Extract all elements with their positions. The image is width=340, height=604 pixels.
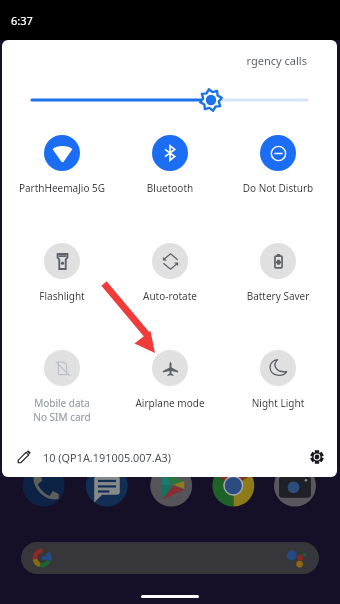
button[interactable]: Auto-rotate [116, 243, 224, 319]
staticText: No SIM card [8, 410, 116, 424]
button[interactable]: Airplane mode [116, 350, 224, 426]
button[interactable] [21, 542, 319, 574]
button[interactable]: Flashlight [8, 243, 116, 319]
staticText: Battery Saver [224, 289, 332, 303]
button[interactable]: Mobile data [8, 350, 116, 426]
button[interactable] [2, 90, 337, 110]
button[interactable]: Settings [305, 445, 329, 469]
button[interactable]: ParthHeemaJio 5G [8, 135, 116, 211]
button[interactable]: Do Not Disturb [224, 135, 332, 211]
staticText: Emergency calls only [246, 53, 310, 68]
button[interactable]: Night Light [224, 350, 332, 426]
button[interactable]: Bluetooth [116, 135, 224, 211]
staticText: 10 (QP1A.191005.007.A3) [43, 450, 172, 465]
staticText: Bluetooth [116, 181, 224, 195]
button[interactable]: Edit [12, 444, 36, 468]
staticText: Airplane mode [116, 396, 224, 410]
staticText: Auto-rotate [116, 289, 224, 303]
staticText: Mobile data [8, 396, 116, 410]
staticText: 6:37 [11, 13, 33, 28]
staticText: ParthHeemaJio 5G [8, 181, 116, 195]
staticText: Night Light [224, 396, 332, 410]
button[interactable]: Battery Saver [224, 243, 332, 319]
staticText: Flashlight [8, 289, 116, 303]
staticText: Do Not Disturb [224, 181, 332, 195]
